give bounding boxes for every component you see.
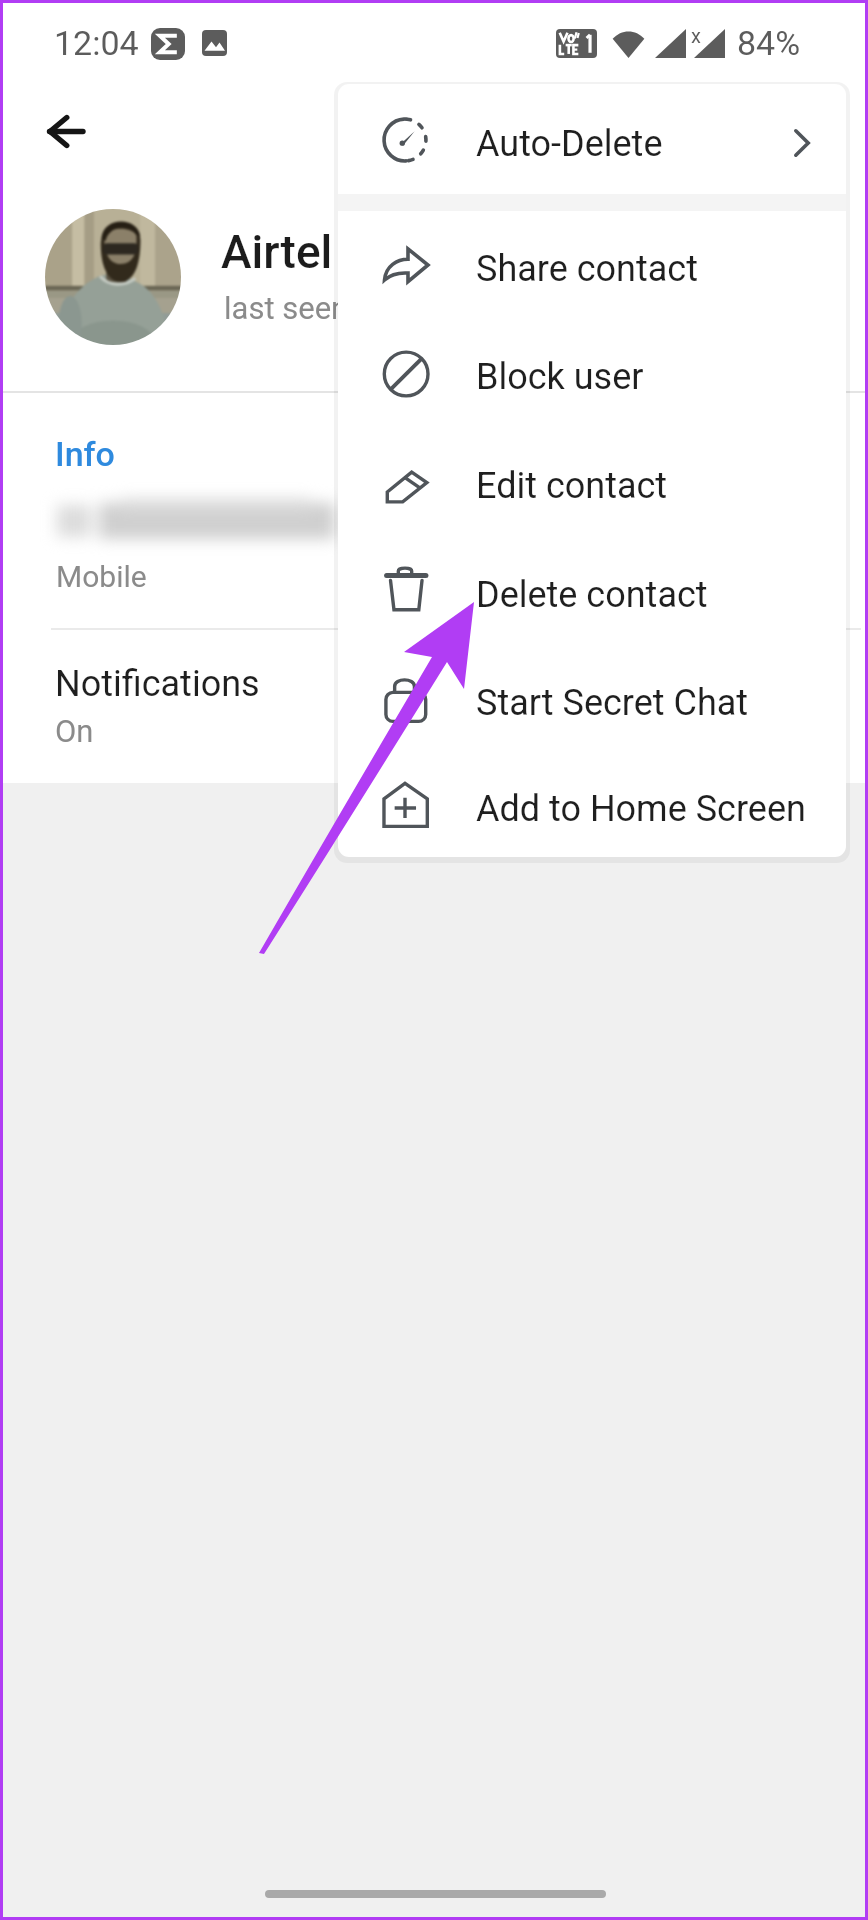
staticText: Notifications	[55, 663, 260, 705]
button[interactable]: Profile photo	[45, 209, 181, 345]
button[interactable]	[3, 183, 865, 373]
button[interactable]: Delete contact	[338, 541, 846, 649]
button[interactable]: Add to Home Screen	[338, 760, 846, 857]
staticText: Edit contact	[476, 465, 668, 507]
button[interactable]: Block user	[338, 323, 846, 431]
staticText: Mobile	[56, 559, 147, 594]
button[interactable]: Start Secret Chat	[338, 649, 846, 757]
button[interactable]: Back	[26, 91, 106, 171]
staticText: x	[691, 24, 701, 47]
staticText: Share contact	[476, 248, 698, 290]
staticText: On	[55, 713, 94, 749]
button[interactable]: Auto-Delete	[338, 89, 846, 199]
button[interactable]: Edit contact	[338, 431, 846, 541]
staticText: Start Secret Chat	[476, 682, 749, 724]
staticText: Add to Home Screen	[476, 788, 806, 830]
button[interactable]	[3, 473, 865, 621]
staticText: Info	[55, 434, 115, 474]
staticText: Delete contact	[476, 574, 708, 616]
button[interactable]: Share contact	[338, 215, 846, 323]
staticText: Airtel	[221, 225, 333, 279]
staticText: Auto-Delete	[476, 123, 663, 165]
staticText: last seen recently	[224, 290, 465, 326]
staticText: 12:04	[54, 23, 139, 63]
staticText: Block user	[476, 356, 644, 398]
staticText: 84%	[737, 23, 801, 63]
button[interactable]	[3, 643, 865, 783]
